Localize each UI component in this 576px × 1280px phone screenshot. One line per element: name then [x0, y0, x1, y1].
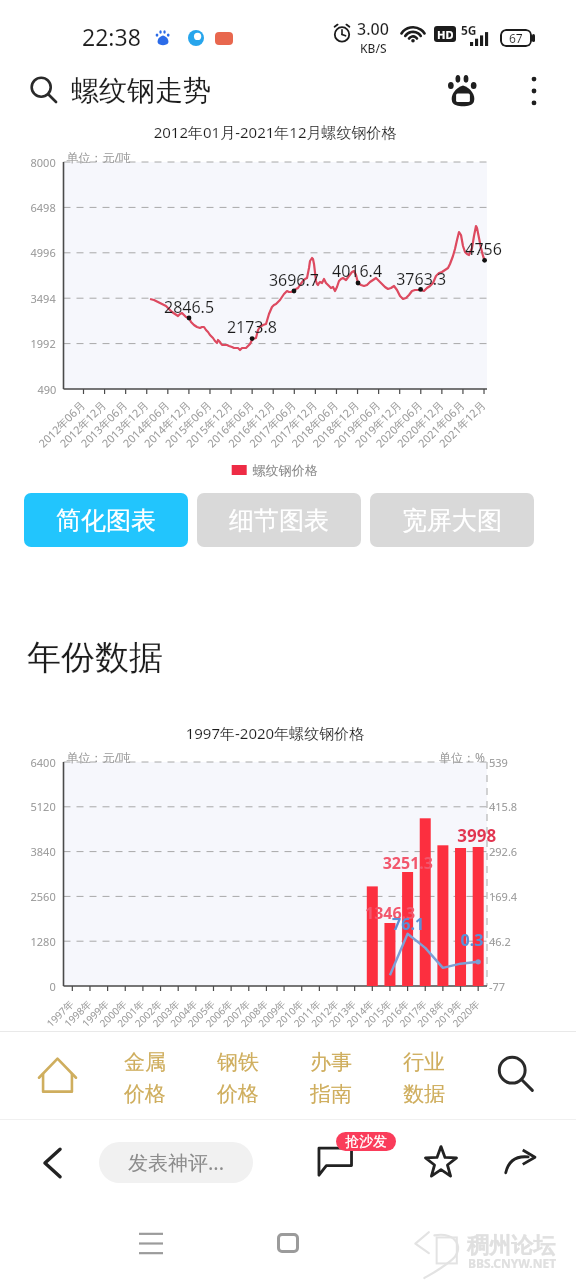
staticText: 指南: [310, 1081, 352, 1107]
button[interactable]: 宽屏大图: [370, 493, 534, 547]
button[interactable]: 行业: [396, 1049, 452, 1107]
staticText: 22:38: [82, 21, 141, 52]
button[interactable]: Comment: [308, 1136, 360, 1188]
staticText: 5G: [461, 22, 477, 38]
staticText: 价格: [217, 1081, 259, 1107]
button[interactable]: Recent apps: [121, 1213, 181, 1273]
staticText: 3.00: [357, 18, 389, 40]
button[interactable]: Search: [22, 68, 66, 112]
staticText: 价格: [124, 1081, 166, 1107]
button[interactable]: Baidu app: [440, 68, 486, 114]
staticText: KB/S: [360, 40, 387, 56]
staticText: 细节图表: [229, 505, 329, 536]
staticText: 螺纹钢走势: [71, 73, 211, 108]
staticText: 办事: [310, 1049, 352, 1075]
button[interactable]: Home: [27, 1045, 87, 1105]
button[interactable]: Search: [487, 1045, 545, 1103]
staticText: HD: [437, 27, 454, 42]
staticText: BBS.CNYW.NET: [468, 1255, 557, 1271]
button[interactable]: 办事: [303, 1049, 359, 1107]
staticText: 发表神评...: [128, 1149, 225, 1176]
button[interactable]: More options: [512, 69, 556, 113]
staticText: 金属: [124, 1049, 166, 1075]
button[interactable]: 钢铁: [210, 1049, 266, 1107]
button[interactable]: 发表神评...: [99, 1142, 253, 1183]
button[interactable]: 金属: [117, 1049, 173, 1107]
staticText: 67: [509, 30, 523, 46]
button[interactable]: 简化图表: [24, 493, 188, 547]
button[interactable]: Back: [26, 1137, 78, 1189]
staticText: 抢沙发: [345, 1133, 387, 1151]
button[interactable]: Favorite: [415, 1136, 467, 1188]
button[interactable]: Share: [494, 1136, 546, 1188]
staticText: 钢铁: [217, 1049, 259, 1075]
button[interactable]: Home: [258, 1213, 318, 1273]
staticText: 简化图表: [56, 505, 156, 536]
staticText: 数据: [403, 1081, 445, 1107]
staticText: 宽屏大图: [402, 505, 502, 536]
staticText: 行业: [403, 1049, 445, 1075]
staticText: 稠州论坛: [467, 1232, 555, 1260]
button[interactable]: 细节图表: [197, 493, 361, 547]
staticText: 年份数据: [27, 636, 163, 679]
